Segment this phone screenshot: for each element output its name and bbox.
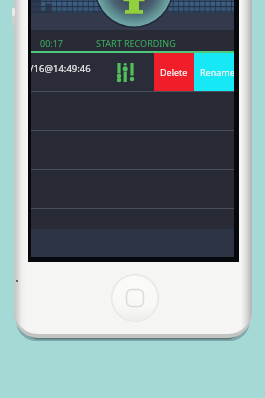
staticText: Rename xyxy=(200,66,234,78)
staticText: 00:17 xyxy=(40,37,64,49)
staticText: REC11/16@14:49:46 xyxy=(31,62,91,75)
button[interactable]: Start recording xyxy=(31,0,234,30)
staticText: Delete xyxy=(160,66,188,78)
staticText: START RECORDING xyxy=(96,37,176,49)
button[interactable]: REC11/16@14:49:46 xyxy=(31,53,154,91)
button[interactable]: Home xyxy=(111,274,159,322)
button[interactable]: Delete xyxy=(154,53,194,91)
button[interactable]: Rename xyxy=(194,53,234,91)
